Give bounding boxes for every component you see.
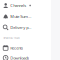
staticText: Downloads — [10, 55, 29, 60]
button[interactable]: Channels — [0, 0, 51, 11]
staticText: Mute Summary — [10, 14, 31, 19]
staticText: Channels — [10, 3, 26, 8]
button[interactable]: Mute Summary — [0, 11, 51, 22]
button[interactable]: Delivery point — [0, 22, 51, 33]
staticText: SHARED FILES — [3, 36, 19, 40]
staticText: Delivery point — [10, 25, 31, 30]
button[interactable]: Recents — [0, 43, 51, 53]
button[interactable]: Downloads — [0, 53, 51, 60]
staticText: Recents — [10, 45, 23, 51]
